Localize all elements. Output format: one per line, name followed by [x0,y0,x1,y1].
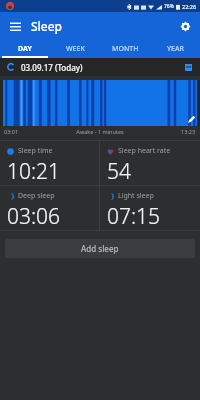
button[interactable]: Pick date [181,60,195,74]
staticText: 13:23 [181,128,196,135]
button[interactable]: 03.09.17 (Today) [0,58,200,76]
button[interactable]: Deep sleep [0,186,99,230]
staticText: Sleep heart rate [118,146,171,156]
staticText: 54 [107,157,131,185]
staticText: WEEK [66,44,85,54]
button[interactable]: WEEK [50,39,100,58]
staticText: YEAR [167,44,184,54]
staticText: 76% [164,3,174,10]
staticText: 22:26 [182,3,197,10]
staticText: Sleep time [18,146,53,156]
button[interactable]: Light sleep [100,186,200,230]
staticText: MONTH [112,44,139,54]
staticText: 03.09.17 (Today) [21,62,83,73]
button[interactable]: Add sleep [5,239,195,258]
staticText: 10:21 [7,157,61,185]
staticText: Add sleep [81,243,119,254]
staticText: DAY [18,44,32,54]
staticText: 07:15 [107,202,161,230]
button[interactable]: Sleep heart rate [100,141,200,185]
button[interactable]: MONTH [100,39,150,58]
button[interactable]: Sleep time [0,141,99,185]
button[interactable]: Open navigation menu [6,17,24,35]
staticText: Light sleep [118,191,154,201]
staticText: Sleep [31,18,63,34]
button[interactable]: DAY [0,39,50,58]
button[interactable]: Sleep graph [0,80,200,126]
staticText: Awake - 1 minutes [19,128,181,135]
button[interactable]: Settings [176,17,194,35]
staticText: 03:06 [7,202,61,230]
staticText: 03:01 [4,128,19,135]
button[interactable]: YEAR [150,39,200,58]
staticText: Deep sleep [18,191,55,201]
